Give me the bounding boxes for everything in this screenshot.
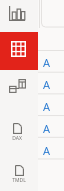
staticText: A xyxy=(43,121,51,136)
button[interactable]: Model view xyxy=(0,74,38,100)
staticText: A xyxy=(43,99,51,114)
button[interactable]: Table view xyxy=(0,32,38,70)
staticText: TMDL xyxy=(12,177,26,184)
button[interactable]: A xyxy=(38,95,64,117)
button[interactable]: TMDL view xyxy=(0,160,38,186)
button[interactable]: A xyxy=(38,139,64,161)
button[interactable]: Report view xyxy=(0,0,38,28)
button[interactable]: A xyxy=(38,51,64,73)
staticText: A xyxy=(43,55,51,70)
button[interactable]: A xyxy=(38,73,64,95)
staticText: A xyxy=(43,77,51,92)
button[interactable]: A xyxy=(38,117,64,139)
staticText: DAX xyxy=(12,135,22,142)
button[interactable]: DAX query view xyxy=(0,118,38,144)
staticText: A xyxy=(43,143,51,158)
